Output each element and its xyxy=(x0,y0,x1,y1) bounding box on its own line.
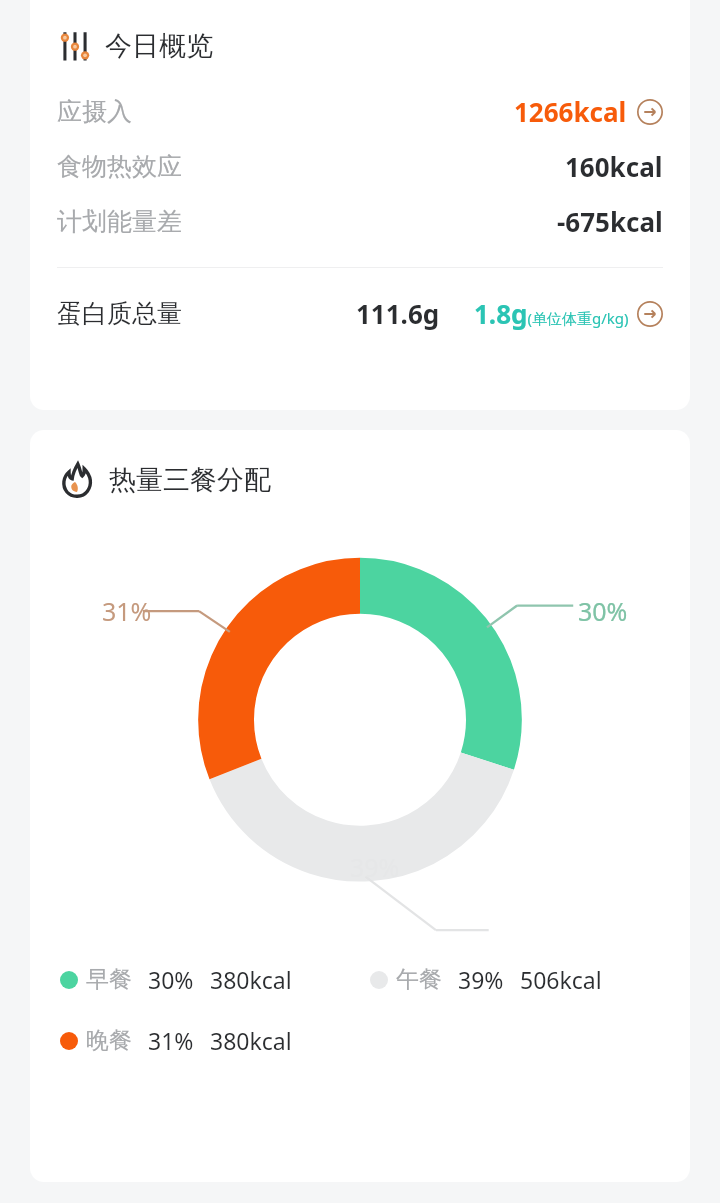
staticText: 蛋白质总量 xyxy=(57,298,182,329)
staticText: 应摄入 xyxy=(57,96,132,127)
staticText: 午餐 xyxy=(396,965,442,994)
button[interactable]: 计划能量差 xyxy=(30,204,690,239)
staticText: 热量三餐分配 xyxy=(109,463,271,497)
staticText: 111.6g xyxy=(356,296,440,331)
staticText: 30% xyxy=(148,964,194,995)
staticText: 1.8g(单位体重g/kg) xyxy=(474,296,629,331)
staticText: 39% xyxy=(350,850,400,884)
other: Details xyxy=(637,301,663,327)
staticText: 39% xyxy=(458,964,504,995)
other: Overview xyxy=(57,28,93,64)
staticText: 31% xyxy=(102,594,152,628)
staticText: 1266kcal xyxy=(514,94,627,129)
staticText: 380kcal xyxy=(210,1025,292,1056)
staticText: 今日概览 xyxy=(105,29,213,63)
staticText: 早餐 xyxy=(86,965,132,994)
button[interactable]: 食物热效应 xyxy=(30,149,690,184)
button[interactable]: Overview xyxy=(57,28,213,64)
staticText: 食物热效应 xyxy=(57,151,182,182)
staticText: 晚餐 xyxy=(86,1026,132,1055)
staticText: 380kcal xyxy=(210,964,292,995)
staticText: 计划能量差 xyxy=(57,206,182,237)
staticText: 160kcal xyxy=(565,149,663,184)
other: Details xyxy=(637,99,663,125)
staticText: 31% xyxy=(148,1025,194,1056)
staticText: 506kcal xyxy=(520,964,602,995)
staticText: 30% xyxy=(578,594,628,628)
button[interactable]: Calories xyxy=(57,460,271,500)
staticText: -675kcal xyxy=(557,204,663,239)
button[interactable]: 午餐 xyxy=(370,964,602,995)
button[interactable]: 晚餐 xyxy=(60,1025,292,1056)
button[interactable]: 早餐 xyxy=(60,964,292,995)
button[interactable]: 应摄入 xyxy=(30,94,690,129)
button[interactable]: 蛋白质总量 xyxy=(30,296,690,331)
other: Calories xyxy=(57,460,97,500)
